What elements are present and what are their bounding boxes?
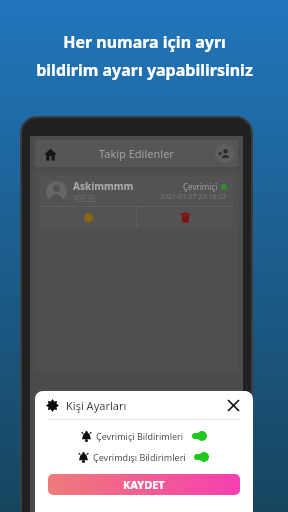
button[interactable]: Çevrimiçi Bildirimleri	[35, 428, 253, 444]
staticText: 90535	[73, 193, 96, 204]
button[interactable]: Askimmmm	[40, 176, 233, 228]
button[interactable]: Settings	[40, 207, 136, 228]
button[interactable]: Home	[39, 143, 61, 165]
staticText: Çevrimiçi Bildirimleri	[96, 430, 184, 442]
staticText: Askimmmm	[73, 179, 134, 193]
button[interactable]: Close	[224, 396, 242, 414]
button[interactable]: Add person	[215, 144, 234, 163]
staticText: 2021-01-07 23:16:22	[160, 192, 227, 202]
staticText: Çevrimiçi	[183, 181, 218, 192]
staticText: Her numara için ayrı	[63, 31, 226, 53]
staticText: Kişi Ayarları	[66, 398, 127, 413]
staticText: Takip Edilenler	[99, 146, 174, 161]
staticText: Çevrimdışı Bildirimleri	[93, 451, 186, 463]
staticText: KAYDET	[123, 477, 165, 492]
staticText: bildirim ayarı yapabilirsiniz	[36, 59, 253, 81]
button[interactable]: Çevrimdışı Bildirimleri	[35, 449, 253, 465]
button[interactable]: KAYDET	[48, 474, 240, 495]
button[interactable]: Delete	[137, 207, 233, 228]
